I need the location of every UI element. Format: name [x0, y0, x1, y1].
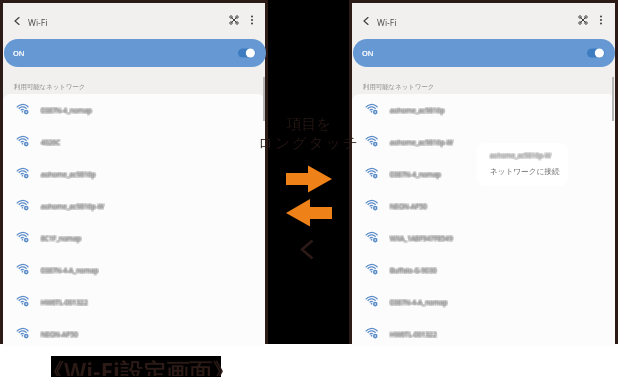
staticText: 0387N-4_nomap [42, 107, 93, 116]
button[interactable]: aohome_ac9816p [3, 158, 265, 190]
staticText: aohome_ac9816p-W [40, 201, 103, 210]
staticText: NEON-AP50 [389, 202, 426, 211]
button[interactable]: HW6TL-001322 [352, 318, 615, 346]
button[interactable]: Back [356, 11, 376, 31]
staticText: aohome_ac9816p-W [391, 138, 454, 147]
button[interactable]: More options [591, 10, 611, 30]
staticText: 0387N-4-A_nomap [390, 297, 448, 306]
staticText: aohome_ac9816p [389, 105, 444, 114]
staticText: aohome_ac9816p [389, 107, 444, 116]
staticText: HW6TL-001322 [391, 331, 438, 340]
staticText: 0387N-4-A_nomap [41, 266, 99, 275]
button[interactable]: Wi-Fi Direct [573, 10, 593, 30]
button[interactable]: 0387N-4_nomap [352, 158, 615, 190]
staticText: ネットワークに接続 [490, 167, 560, 177]
button[interactable]: aohome_ac9816p [352, 94, 615, 126]
staticText: aohome_ac9816p-W [42, 202, 105, 211]
staticText: HW6TL-001322 [42, 297, 89, 306]
staticText: 0387N-4_nomap [391, 170, 442, 179]
staticText: aohome_ac9816p-W [489, 152, 550, 161]
staticText: 8C1F_nomap [41, 235, 82, 244]
staticText: NEON-AP50 [41, 330, 78, 339]
staticText: aohome_ac9816p [42, 170, 97, 179]
staticText: HW6TL-001322 [391, 330, 438, 339]
staticText: 利用可能なネットワーク [14, 83, 86, 91]
staticText: WXA_1ABF947F8549 [389, 234, 452, 243]
staticText: aohome_ac9816p [390, 106, 445, 115]
button[interactable]: 0387N-4-A_nomap [352, 286, 615, 318]
staticText: 0387N-4_nomap [391, 169, 442, 178]
button[interactable]: WXA_1ABF947F8549 [352, 222, 615, 254]
staticText: aohome_ac9816p [41, 170, 96, 179]
staticText: ON [13, 48, 25, 58]
button[interactable]: Back [7, 11, 27, 31]
staticText: 0387N-4_nomap [41, 107, 92, 116]
staticText: 0387N-4_nomap [42, 105, 93, 114]
staticText: aohome_ac9816p-W [489, 151, 550, 160]
staticText: aohome_ac9816p-W [389, 138, 452, 147]
staticText: aohome_ac9816p [42, 171, 97, 180]
staticText: aohome_ac9816p [390, 105, 445, 114]
staticText: 8C1F_nomap [42, 234, 83, 243]
button[interactable]: NEON-AP50 [3, 318, 265, 346]
button[interactable]: Wi-Fi Direct [224, 10, 244, 30]
staticText: aohome_ac9816p [391, 105, 446, 114]
staticText: aohome_ac9816p [391, 106, 446, 115]
staticText: 0387N-4_nomap [390, 169, 441, 178]
button[interactable]: ON [353, 39, 615, 67]
staticText: aohome_ac9816p-W [42, 201, 105, 210]
button[interactable]: Buffalo-G-9030 [352, 254, 615, 286]
staticText: aohome_ac9816p-W [389, 137, 452, 146]
button[interactable]: NEON-AP50 [352, 190, 615, 222]
staticText: NEON-AP50 [42, 331, 79, 340]
staticText: 0387N-4-A_nomap [41, 267, 99, 276]
staticText: aohome_ac9816p [41, 171, 96, 180]
button[interactable]: HW6TL-001322 [3, 286, 265, 318]
staticText: 0387N-4-A_nomap [389, 299, 447, 308]
button[interactable]: More options [242, 10, 262, 30]
button[interactable]: 0387N-4_nomap [3, 94, 265, 126]
staticText: aohome_ac9816p-W [390, 138, 453, 147]
button[interactable]: aohome_ac9816p-W [3, 190, 265, 222]
staticText: aohome_ac9816p [391, 107, 446, 116]
staticText: NEON-AP50 [40, 331, 77, 340]
staticText: aohome_ac9816p-W [40, 202, 103, 211]
staticText: HW6TL-001322 [41, 298, 88, 307]
staticText: 0387N-4_nomap [42, 106, 93, 115]
button[interactable]: 4026C [3, 126, 265, 158]
staticText: NEON-AP50 [390, 202, 427, 211]
button[interactable]: 0387N-4-A_nomap [3, 254, 265, 286]
staticText: NEON-AP50 [42, 329, 79, 338]
staticText: HW6TL-001322 [389, 329, 436, 338]
staticText: WXA_1ABF947F8549 [391, 235, 454, 244]
staticText: NEON-AP50 [40, 329, 77, 338]
staticText: aohome_ac9816p-W [390, 139, 453, 148]
button[interactable]: ON [4, 39, 266, 67]
button[interactable]: aohome_ac9816p-W [352, 126, 615, 158]
staticText: Buffalo-G-9030 [391, 265, 438, 274]
staticText: aohome_ac9816p [40, 170, 95, 179]
staticText: NEON-AP50 [391, 202, 428, 211]
staticText: 0387N-4-A_nomap [391, 297, 449, 306]
staticText: aohome_ac9816p [40, 169, 95, 178]
staticText: aohome_ac9816p-W [490, 152, 551, 161]
staticText: 0387N-4_nomap [389, 170, 440, 179]
staticText: HW6TL-001322 [41, 299, 88, 308]
staticText: 4026C [41, 139, 61, 148]
button[interactable]: 8C1F_nomap [3, 222, 265, 254]
staticText: 0387N-4-A_nomap [42, 267, 100, 276]
staticText: 項目を [287, 115, 332, 133]
staticText: WXA_1ABF947F8549 [390, 234, 453, 243]
staticText: 4026C [40, 138, 60, 147]
staticText: 0387N-4_nomap [40, 105, 91, 114]
button[interactable]: aohome_ac9816p-W [477, 143, 568, 186]
staticText: 0387N-4_nomap [390, 171, 441, 180]
staticText: 4026C [42, 138, 62, 147]
staticText: NEON-AP50 [40, 330, 77, 339]
staticText: HW6TL-001322 [40, 298, 87, 307]
staticText: WXA_1ABF947F8549 [389, 233, 452, 242]
staticText: HW6TL-001322 [40, 299, 87, 308]
staticText: Wi-Fi [28, 17, 48, 29]
staticText: aohome_ac9816p-W [41, 203, 104, 212]
staticText: Buffalo-G-9030 [390, 267, 437, 276]
